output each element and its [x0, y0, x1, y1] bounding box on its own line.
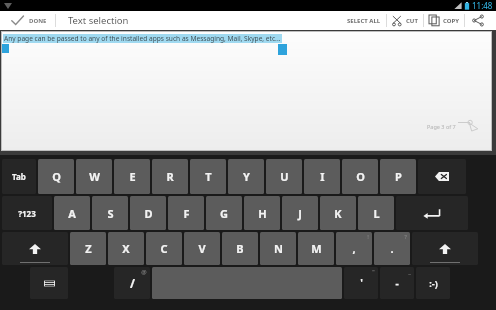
staticText: Text selection — [68, 14, 129, 27]
staticText: N — [274, 241, 283, 256]
button[interactable]: Share — [472, 11, 484, 30]
staticText: CUT — [406, 17, 418, 25]
button[interactable]: X — [108, 232, 144, 265]
button[interactable]: Q — [38, 159, 74, 194]
button[interactable]: Y — [228, 159, 264, 194]
button[interactable]: W — [76, 159, 112, 194]
staticText: G — [220, 206, 228, 221]
staticText: Q — [52, 169, 61, 184]
button[interactable]: Z — [70, 232, 106, 265]
staticText: V — [198, 241, 206, 256]
button[interactable]: T — [190, 159, 226, 194]
button[interactable]: Backspace — [418, 159, 466, 194]
button[interactable]: :-) — [416, 267, 450, 299]
button[interactable]: CUT — [392, 11, 418, 30]
staticText: Any page can be passed to any of the ins… — [4, 34, 281, 43]
staticText: L — [373, 206, 380, 221]
staticText: R — [166, 169, 174, 184]
staticText: C — [160, 241, 168, 256]
staticText: O — [356, 169, 365, 184]
staticText: P — [395, 169, 402, 184]
staticText: ' — [360, 276, 363, 290]
staticText: :-) — [429, 277, 438, 289]
staticText: / — [130, 275, 135, 291]
staticText: . — [390, 241, 394, 256]
button[interactable]: D — [130, 196, 166, 230]
button[interactable]: S — [92, 196, 128, 230]
staticText: E — [129, 169, 136, 184]
staticText: ! — [367, 233, 369, 241]
button[interactable]: H — [244, 196, 280, 230]
staticText: COPY — [443, 17, 459, 25]
button[interactable]: Switch keyboard — [30, 267, 68, 299]
staticText: U — [280, 169, 289, 184]
button[interactable]: SELECT ALL — [347, 11, 381, 30]
staticText: ? — [404, 233, 407, 241]
staticText: I — [320, 169, 325, 184]
staticText: 11:48 — [472, 0, 493, 11]
button[interactable]: G — [206, 196, 242, 230]
button[interactable]: E — [114, 159, 150, 194]
staticText: SELECT ALL — [347, 17, 381, 25]
button[interactable]: K — [320, 196, 356, 230]
staticText: D — [144, 206, 153, 221]
button[interactable]: " — [344, 267, 378, 299]
button[interactable]: @ — [114, 267, 150, 299]
button[interactable]: Enter — [396, 196, 468, 230]
staticText: Z — [85, 241, 92, 256]
button[interactable]: ! — [336, 232, 372, 265]
button[interactable]: Tab — [2, 159, 36, 194]
button[interactable]: Shift — [2, 232, 68, 265]
staticText: " — [372, 268, 375, 276]
button[interactable]: R — [152, 159, 188, 194]
button[interactable]: C — [146, 232, 182, 265]
staticText: B — [236, 241, 244, 256]
staticText: DONE — [29, 17, 47, 25]
button[interactable]: M — [298, 232, 334, 265]
button[interactable]: _ — [380, 267, 414, 299]
staticText: K — [334, 206, 342, 221]
button[interactable]: ? — [374, 232, 410, 265]
button[interactable]: Any page can be passed to any of the ins… — [1, 31, 492, 151]
staticText: J — [298, 206, 302, 221]
button[interactable]: Symbols — [2, 196, 52, 230]
button[interactable]: V — [184, 232, 220, 265]
staticText: M — [311, 241, 322, 256]
staticText: Page 3 of 7 — [427, 123, 456, 130]
button[interactable]: O — [342, 159, 378, 194]
button[interactable]: COPY — [429, 11, 459, 30]
staticText: H — [258, 206, 267, 221]
staticText: _ — [408, 268, 411, 276]
button[interactable]: A — [54, 196, 90, 230]
button[interactable]: F — [168, 196, 204, 230]
button[interactable]: I — [304, 159, 340, 194]
staticText: ?123 — [18, 208, 36, 219]
staticText: X — [122, 241, 130, 256]
staticText: @ — [141, 268, 147, 276]
staticText: T — [205, 169, 212, 184]
staticText: Y — [243, 169, 250, 184]
staticText: , — [352, 241, 356, 256]
staticText: A — [68, 206, 76, 221]
button[interactable]: J — [282, 196, 318, 230]
staticText: S — [107, 206, 114, 221]
staticText: Tab — [12, 171, 26, 182]
staticText: - — [395, 276, 399, 290]
button[interactable]: DONE — [11, 11, 47, 30]
button[interactable]: B — [222, 232, 258, 265]
button[interactable]: Shift — [412, 232, 478, 265]
button[interactable]: L — [358, 196, 394, 230]
button[interactable]: N — [260, 232, 296, 265]
button[interactable]: P — [380, 159, 416, 194]
staticText: W — [89, 169, 100, 184]
staticText: F — [183, 206, 190, 221]
button[interactable]: U — [266, 159, 302, 194]
